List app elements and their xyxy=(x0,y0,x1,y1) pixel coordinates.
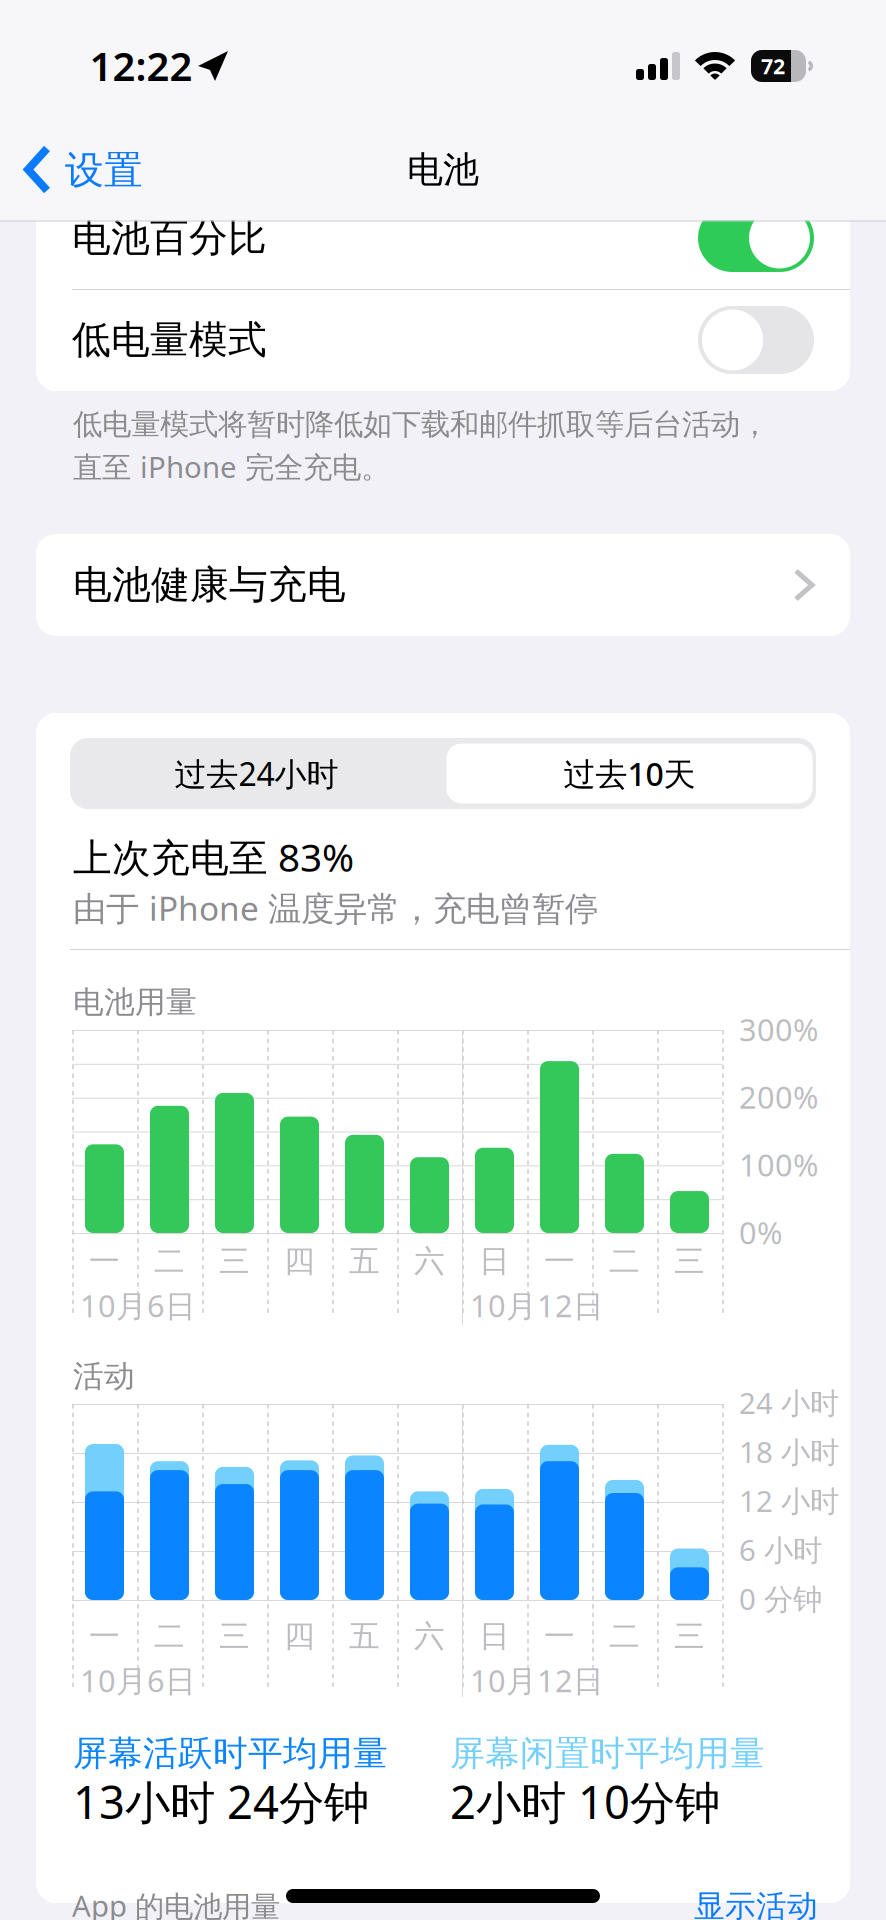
staticText: 电池百分比 xyxy=(72,214,267,261)
staticText: 一 xyxy=(89,1242,120,1280)
staticText: 一 xyxy=(89,1617,120,1655)
staticText: App 的电池用量 xyxy=(72,1886,280,1920)
staticText: 二 xyxy=(609,1242,640,1280)
staticText: 三 xyxy=(674,1242,705,1280)
staticText: 二 xyxy=(154,1242,185,1280)
staticText: 200% xyxy=(739,1077,818,1117)
staticText: 电池 xyxy=(407,148,479,192)
staticText: 100% xyxy=(739,1144,818,1185)
button[interactable]: App 的电池用量 xyxy=(70,1889,850,1920)
staticText: 300% xyxy=(739,1009,818,1050)
staticText: 6 小时 xyxy=(739,1530,822,1569)
button[interactable]: 设置 xyxy=(0,120,200,220)
staticText: 24 小时 xyxy=(739,1383,839,1422)
staticText: 六 xyxy=(414,1617,445,1655)
staticText: 过去10天 xyxy=(563,752,695,795)
staticText: 10月6日 xyxy=(80,1660,196,1701)
staticText: 六 xyxy=(414,1242,445,1280)
staticText: 上次充电至 83% xyxy=(73,831,354,882)
staticText: 直至 iPhone 完全充电。 xyxy=(73,447,390,486)
staticText: 四 xyxy=(284,1242,315,1280)
staticText: 12 小时 xyxy=(739,1481,839,1520)
staticText: 二 xyxy=(154,1617,185,1655)
staticText: 屏幕活跃时平均用量 xyxy=(73,1732,388,1775)
staticText: 电池用量 xyxy=(73,983,197,1021)
staticText: 日 xyxy=(479,1242,510,1280)
button[interactable]: 过去24小时 xyxy=(70,738,443,809)
staticText: 一 xyxy=(544,1617,575,1655)
staticText: 过去24小时 xyxy=(174,752,338,795)
staticText: 12:22 xyxy=(89,39,192,92)
staticText: 三 xyxy=(674,1617,705,1655)
staticText: 显示活动 xyxy=(694,1887,818,1920)
staticText: 10月6日 xyxy=(80,1285,196,1326)
button[interactable]: 屏幕活跃时平均用量 xyxy=(73,1734,433,1834)
staticText: 18 小时 xyxy=(739,1432,839,1471)
staticText: 0 分钟 xyxy=(739,1579,822,1618)
staticText: 低电量模式 xyxy=(72,316,267,363)
staticText: 二 xyxy=(609,1617,640,1655)
staticText: 设置 xyxy=(65,146,143,194)
staticText: 日 xyxy=(479,1617,510,1655)
button[interactable]: Toggle off xyxy=(698,306,814,374)
staticText: 10月12日 xyxy=(470,1660,604,1701)
staticText: 低电量模式将暂时降低如下载和邮件抓取等后台活动， xyxy=(73,406,769,442)
staticText: 电池健康与充电 xyxy=(73,561,346,608)
staticText: 10月12日 xyxy=(470,1285,604,1326)
staticText: 13小时 24分钟 xyxy=(73,1771,369,1832)
staticText: 三 xyxy=(219,1242,250,1280)
button[interactable]: 过去10天 xyxy=(443,738,816,809)
staticText: 72 xyxy=(761,52,785,80)
button[interactable]: 电池健康与充电 xyxy=(36,534,850,636)
staticText: 屏幕闲置时平均用量 xyxy=(450,1732,765,1775)
staticText: 五 xyxy=(349,1617,380,1655)
button[interactable]: Toggle on xyxy=(698,204,814,272)
button[interactable]: 屏幕闲置时平均用量 xyxy=(450,1734,810,1834)
staticText: 三 xyxy=(219,1617,250,1655)
staticText: 2小时 10分钟 xyxy=(450,1771,720,1832)
staticText: 0% xyxy=(739,1212,782,1253)
staticText: 由于 iPhone 温度异常，充电曾暂停 xyxy=(73,886,598,930)
staticText: 一 xyxy=(544,1242,575,1280)
staticText: 四 xyxy=(284,1617,315,1655)
staticText: 五 xyxy=(349,1242,380,1280)
staticText: 活动 xyxy=(73,1357,135,1395)
